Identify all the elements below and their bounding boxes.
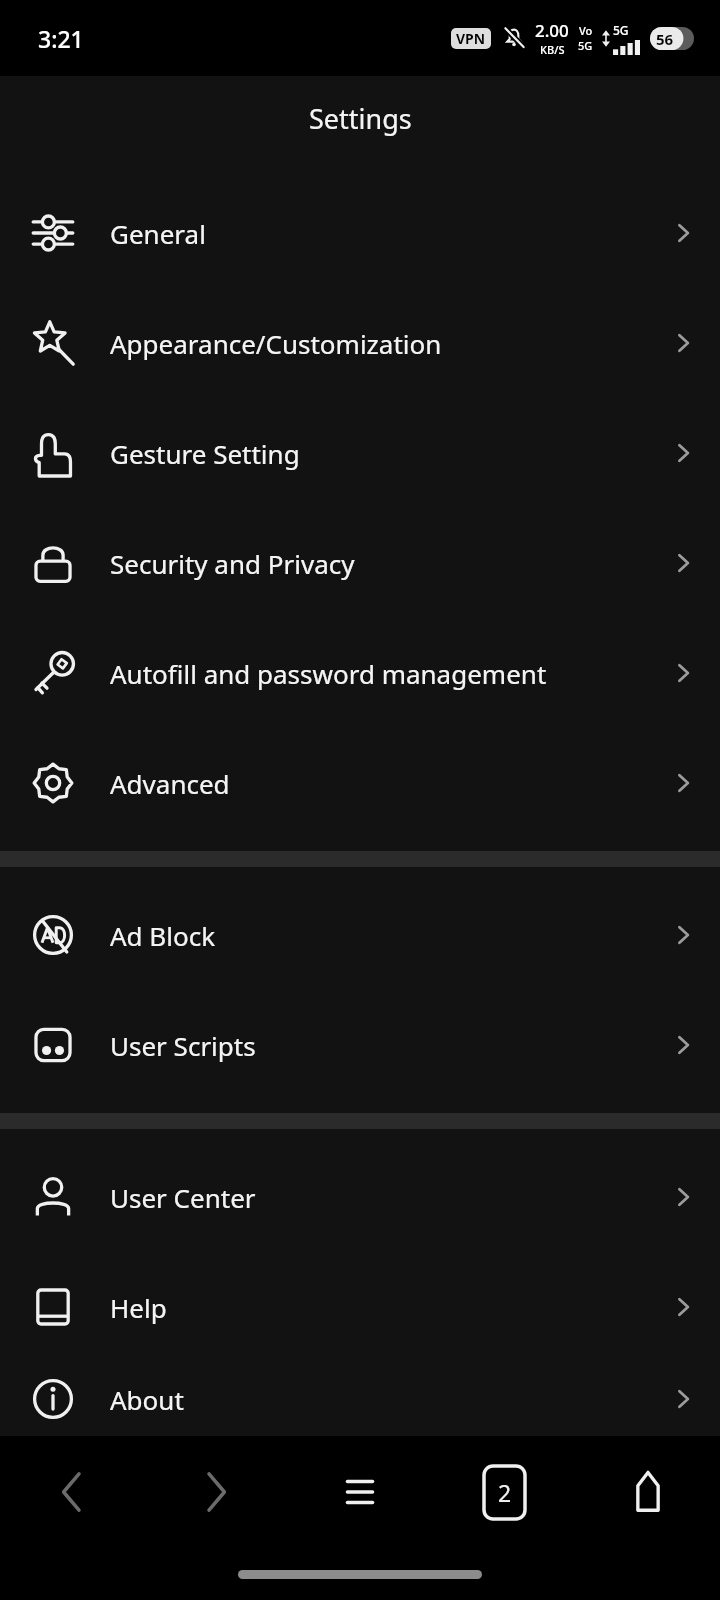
staticText: Gesture Setting: [110, 436, 300, 471]
staticText: 56: [656, 29, 674, 49]
button[interactable]: Appearance/Customization: [0, 288, 720, 398]
staticText: Advanced: [110, 766, 230, 801]
staticText: General: [110, 216, 206, 251]
staticText: Security and Privacy: [110, 546, 355, 581]
staticText: Help: [110, 1290, 167, 1325]
staticText: Ad Block: [110, 918, 216, 953]
button[interactable]: Forward: [144, 1436, 288, 1548]
button[interactable]: Back: [0, 1436, 144, 1548]
button[interactable]: General: [0, 178, 720, 288]
button[interactable]: Menu: [288, 1436, 432, 1548]
button[interactable]: About: [0, 1362, 720, 1436]
button[interactable]: User Scripts: [0, 990, 720, 1100]
staticText: 2.00: [535, 19, 569, 42]
staticText: Appearance/Customization: [110, 326, 442, 361]
button[interactable]: Advanced: [0, 728, 720, 838]
staticText: VPN: [456, 29, 486, 48]
staticText: About: [110, 1382, 184, 1417]
staticText: 5G: [613, 22, 629, 38]
staticText: User Scripts: [110, 1028, 256, 1063]
button[interactable]: Security and Privacy: [0, 508, 720, 618]
staticText: 3:21: [38, 23, 84, 54]
button[interactable]: Autofill and password management: [0, 618, 720, 728]
button[interactable]: Help: [0, 1252, 720, 1362]
staticText: Settings: [309, 100, 412, 137]
button[interactable]: Home: [576, 1436, 720, 1548]
staticText: User Center: [110, 1180, 256, 1215]
staticText: Vo: [579, 23, 593, 38]
staticText: 2: [498, 1477, 512, 1508]
button[interactable]: User Center: [0, 1142, 720, 1252]
staticText: Autofill and password management: [110, 656, 547, 691]
staticText: KB/S: [540, 42, 565, 57]
button[interactable]: Gesture Setting: [0, 398, 720, 508]
staticText: 5G: [578, 38, 593, 53]
button[interactable]: Ad Block: [0, 880, 720, 990]
button[interactable]: Tabs, 2 open: [432, 1436, 576, 1548]
